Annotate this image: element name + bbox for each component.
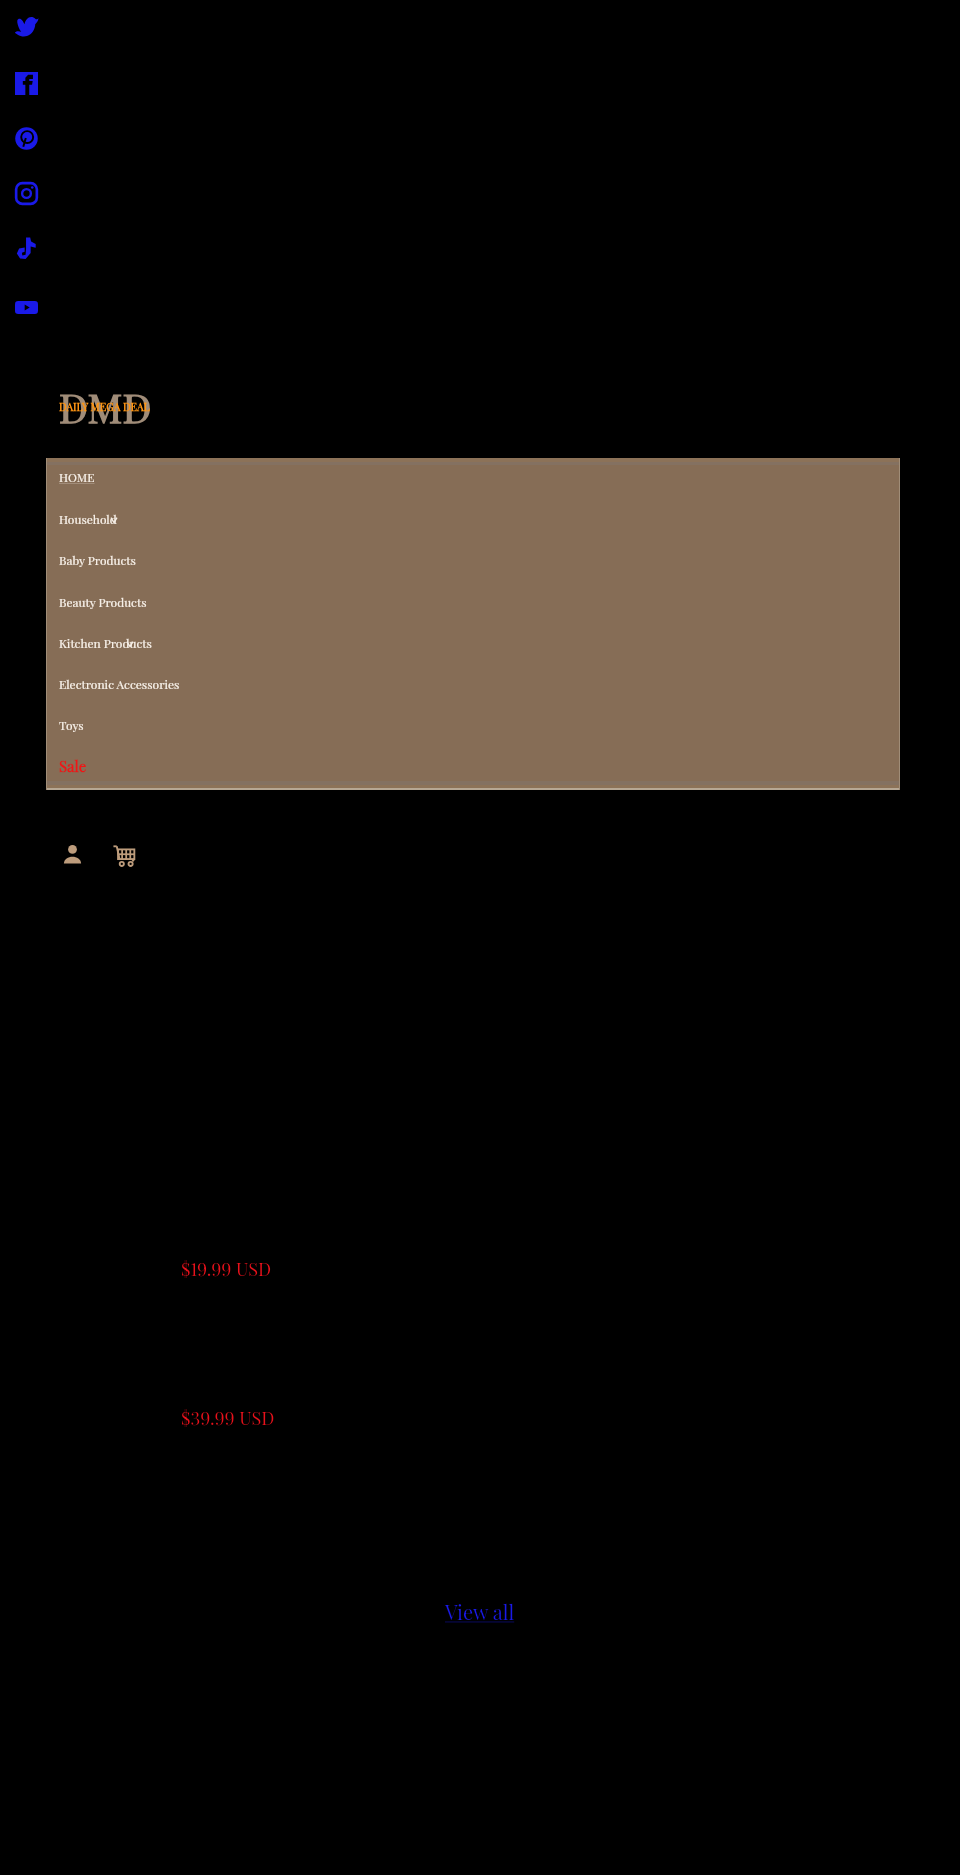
button[interactable]: YouTube — [8, 289, 44, 325]
button[interactable]: Facebook — [8, 65, 44, 101]
staticText: DAILY MEGA DEAL — [59, 400, 150, 414]
button[interactable]: Kitchen Products — [46, 621, 900, 662]
button[interactable]: Cart — [108, 840, 140, 872]
staticText: $19.99 USD — [181, 1256, 272, 1280]
button[interactable]: Toys — [46, 703, 900, 744]
button[interactable]: Instagram — [8, 175, 44, 211]
button[interactable]: Beauty Products — [46, 580, 900, 621]
button[interactable]: DMD — [59, 380, 152, 433]
button[interactable]: Electronic Accessories — [46, 662, 900, 703]
staticText: View all — [445, 1598, 515, 1625]
staticText: Baby Products — [59, 552, 136, 568]
staticText: $39.99 USD — [181, 1405, 275, 1429]
button[interactable]: Twitter — [8, 9, 44, 45]
button[interactable]: HOME — [46, 455, 900, 496]
button[interactable]: TikTok — [8, 230, 44, 266]
button[interactable]: View all — [445, 1598, 515, 1625]
button[interactable]: Pinterest — [8, 120, 44, 156]
staticText: DMD — [59, 380, 152, 433]
staticText: Beauty Products — [59, 594, 147, 610]
staticText: Household — [59, 511, 117, 527]
staticText: HOME — [59, 469, 95, 485]
button[interactable]: Household — [46, 497, 900, 538]
staticText: Kitchen Products — [59, 635, 152, 651]
button[interactable]: Baby Products — [46, 538, 900, 579]
staticText: Toys — [59, 717, 84, 733]
button[interactable]: Account — [56, 838, 88, 870]
staticText: Sale — [59, 756, 87, 776]
staticText: Electronic Accessories — [59, 676, 180, 692]
button[interactable]: Sale — [46, 742, 900, 783]
